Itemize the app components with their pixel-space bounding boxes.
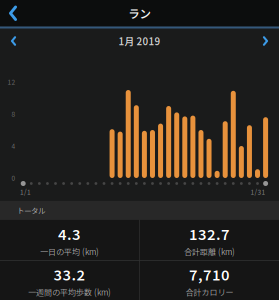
staticText: 4: [11, 141, 15, 151]
staticText: 1/1: [20, 187, 31, 197]
staticText: 33.2: [54, 263, 86, 285]
staticText: 7,710: [189, 263, 230, 285]
staticText: トータル: [17, 205, 45, 216]
staticText: ラン: [128, 5, 150, 21]
button[interactable]: 7,710: [140, 261, 279, 300]
staticText: 合計距離 (km): [184, 246, 235, 257]
staticText: 1月 2019: [118, 34, 160, 48]
staticText: 一週間の平均歩数 (km): [28, 286, 111, 298]
staticText: 4.3: [58, 223, 81, 244]
button[interactable]: 132.7: [140, 220, 279, 260]
button[interactable]: Back: [0, 0, 26, 26]
staticText: 132.7: [189, 223, 230, 244]
button[interactable]: Next month: [252, 30, 279, 51]
staticText: 一日の平均 (km): [40, 246, 99, 257]
staticText: 12: [7, 77, 15, 87]
staticText: 合計カロリー: [185, 286, 233, 298]
button[interactable]: 33.2: [0, 261, 139, 300]
button[interactable]: 4.3: [0, 220, 139, 260]
staticText: 8: [11, 109, 15, 119]
staticText: 1/31: [250, 187, 265, 197]
button[interactable]: Previous month: [0, 30, 27, 51]
staticText: 0: [11, 173, 15, 183]
